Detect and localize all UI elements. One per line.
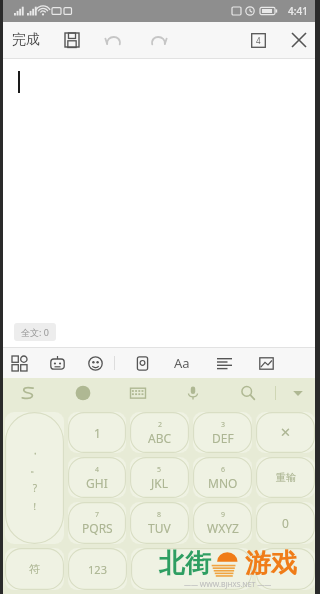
button[interactable]: Sticker <box>38 348 76 378</box>
staticText: WXYZ <box>207 520 239 536</box>
staticText: PQRS <box>82 520 113 536</box>
staticText: 5 <box>157 465 162 475</box>
staticText: 123 <box>88 562 107 577</box>
button[interactable]: Keyboard <box>110 378 165 408</box>
staticText: ✕ <box>280 425 291 440</box>
button[interactable]: Card <box>123 348 161 378</box>
staticText: JKL <box>151 475 168 491</box>
staticText: 9 <box>221 510 226 520</box>
staticText: 4:41 <box>288 4 308 18</box>
button[interactable]: 0 <box>256 502 315 544</box>
button[interactable]: Undo <box>92 22 136 58</box>
button[interactable]: Sogou <box>0 378 55 408</box>
button[interactable]: Font <box>161 348 203 378</box>
staticText: 全文: 0 <box>21 326 49 338</box>
button[interactable]: 2 <box>130 412 189 453</box>
button[interactable]: 重输 <box>256 457 315 498</box>
button[interactable]: Voice <box>165 378 220 408</box>
staticText: 重输 <box>276 471 296 484</box>
staticText: TUV <box>148 520 171 536</box>
button[interactable]: 3 <box>193 412 252 453</box>
staticText: 游戏 <box>245 547 297 580</box>
button[interactable]: 5 <box>130 457 189 498</box>
staticText: 0 <box>282 515 289 531</box>
button[interactable]: 123 <box>68 548 127 590</box>
staticText: —— WWW.BJHXS.NET —— <box>184 580 272 590</box>
button[interactable]: 7 <box>68 502 126 544</box>
button[interactable]: 9 <box>193 502 252 544</box>
button[interactable]: Emoji <box>55 378 110 408</box>
button[interactable]: 符 <box>5 548 64 590</box>
staticText: 3 <box>221 420 226 430</box>
button[interactable]: Collapse <box>276 378 320 408</box>
staticText: 4 <box>95 465 100 475</box>
staticText: ， 。 ? ！ <box>30 444 40 513</box>
staticText: 符 <box>29 562 40 576</box>
staticText: MNO <box>208 475 238 491</box>
staticText: 4 <box>256 35 261 46</box>
button[interactable]: 4 <box>68 457 126 498</box>
button[interactable]: ， 。 ? ！ <box>5 412 64 544</box>
button[interactable]: Align <box>203 348 245 378</box>
button[interactable]: Redo <box>136 22 180 58</box>
staticText: 北街 <box>159 547 211 580</box>
button[interactable] <box>131 548 252 590</box>
button[interactable]: Image <box>245 348 287 378</box>
button[interactable]: 完成 <box>0 22 52 58</box>
button[interactable]: 6 <box>193 457 252 498</box>
staticText: 8 <box>157 510 162 520</box>
staticText: 1 <box>94 425 101 441</box>
button[interactable] <box>256 548 315 590</box>
staticText: Aa <box>174 354 190 372</box>
staticText: 完成 <box>12 31 40 49</box>
button[interactable]: 8 <box>130 502 189 544</box>
button[interactable]: Close <box>278 22 320 58</box>
button[interactable]: Apps <box>0 348 38 378</box>
button[interactable]: Emoji <box>76 348 114 378</box>
staticText: DEF <box>212 430 234 446</box>
staticText: 6 <box>221 465 226 475</box>
button[interactable]: Search <box>220 378 275 408</box>
button[interactable]: 1 <box>68 412 126 453</box>
staticText: GHI <box>86 475 108 491</box>
button[interactable]: ✕ <box>256 412 315 453</box>
button[interactable]: Pages <box>238 22 278 58</box>
staticText: 7 <box>95 510 100 520</box>
staticText: ABC <box>148 430 172 446</box>
button[interactable]: Save <box>52 22 92 58</box>
staticText: 2 <box>158 420 163 430</box>
